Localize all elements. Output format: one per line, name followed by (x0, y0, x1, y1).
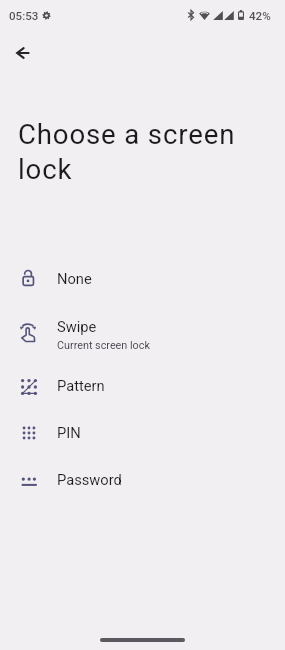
staticText: Pattern (57, 377, 105, 394)
staticText: Choose a screen lock (18, 118, 254, 185)
button[interactable]: PIN (0, 410, 285, 456)
staticText: 05:53 (9, 9, 39, 23)
staticText: PIN (57, 424, 81, 441)
button[interactable]: Pattern (0, 364, 285, 410)
staticText: 42% (249, 9, 271, 23)
button[interactable]: Swipe (0, 306, 285, 360)
staticText: Password (57, 471, 122, 488)
button[interactable]: None (0, 255, 285, 301)
button[interactable]: Back (4, 34, 41, 71)
staticText: Current screen lock (57, 339, 150, 352)
staticText: None (57, 270, 92, 287)
staticText: Swipe (57, 318, 97, 335)
button[interactable]: Password (0, 457, 285, 503)
